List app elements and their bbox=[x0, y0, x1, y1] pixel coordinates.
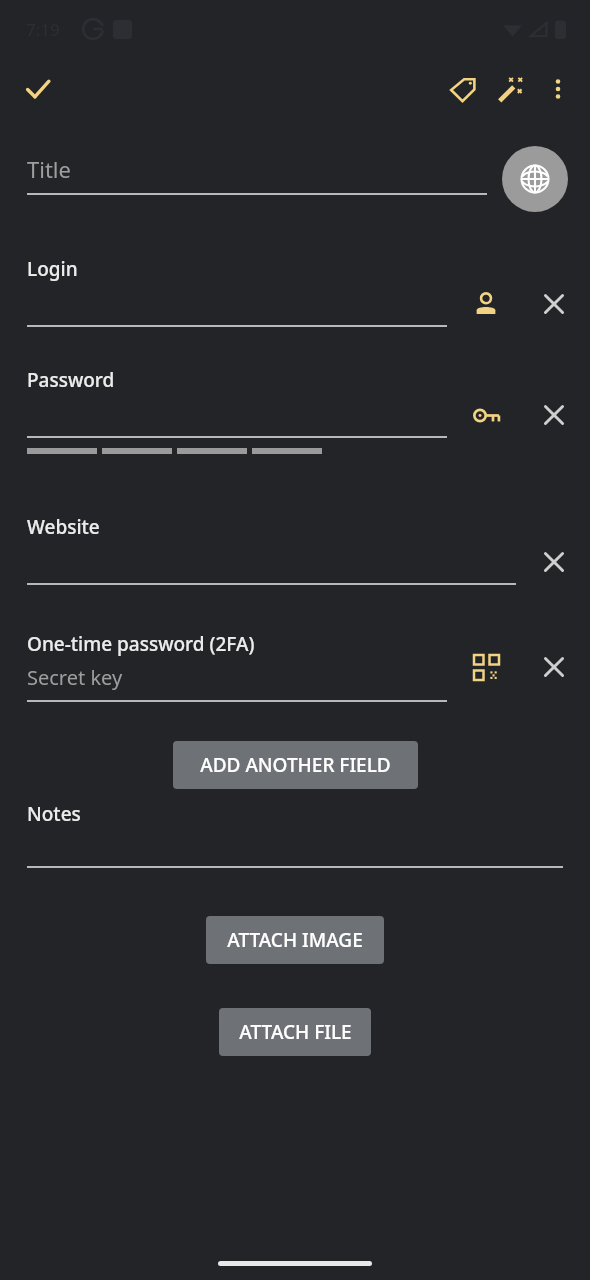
staticText: ADD ANOTHER FIELD bbox=[200, 752, 391, 778]
button[interactable]: Scan QR code bbox=[464, 645, 508, 689]
button[interactable]: Save bbox=[14, 65, 62, 113]
button[interactable]: Generate password bbox=[464, 393, 508, 437]
staticText: Login bbox=[27, 256, 78, 282]
button[interactable]: Tags bbox=[438, 65, 486, 113]
button[interactable]: Clear Login bbox=[532, 282, 576, 326]
button[interactable]: ATTACH IMAGE bbox=[206, 916, 384, 964]
button[interactable]: Generate bbox=[486, 65, 534, 113]
staticText: ATTACH FILE bbox=[239, 1019, 352, 1045]
button[interactable]: ADD ANOTHER FIELD bbox=[173, 741, 418, 789]
staticText: Secret key bbox=[27, 664, 123, 691]
staticText: 7:19 bbox=[26, 18, 60, 41]
staticText: Notes bbox=[27, 801, 81, 827]
button[interactable]: Clear one-time password bbox=[532, 645, 576, 689]
staticText: ATTACH IMAGE bbox=[227, 927, 363, 953]
button[interactable]: Pick login bbox=[464, 282, 508, 326]
staticText: One-time password (2FA) bbox=[27, 631, 255, 657]
button[interactable]: Clear Website bbox=[532, 540, 576, 584]
staticText: Title bbox=[27, 154, 71, 184]
button[interactable]: Clear password bbox=[532, 393, 576, 437]
staticText: Password bbox=[27, 367, 115, 393]
button[interactable]: More options bbox=[534, 65, 582, 113]
staticText: Website bbox=[27, 514, 100, 540]
button[interactable]: ATTACH FILE bbox=[219, 1008, 371, 1056]
button[interactable]: Open website bbox=[502, 146, 568, 212]
